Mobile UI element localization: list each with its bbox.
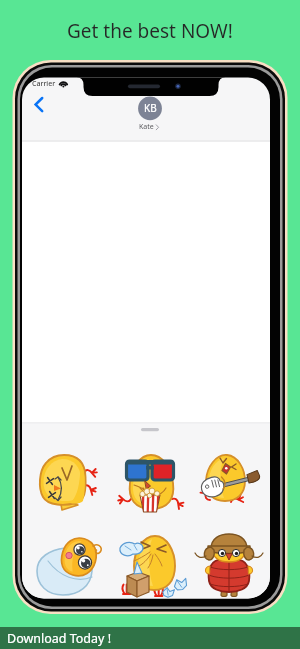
staticText: Get the best NOW! (67, 18, 233, 44)
button[interactable]: Download Today ! (0, 627, 300, 649)
staticText: Kate (139, 122, 154, 132)
staticText: Download Today ! (7, 630, 112, 647)
button[interactable]: KB (138, 96, 162, 120)
staticText: KB (144, 101, 157, 115)
staticText: Carrier (32, 79, 56, 89)
